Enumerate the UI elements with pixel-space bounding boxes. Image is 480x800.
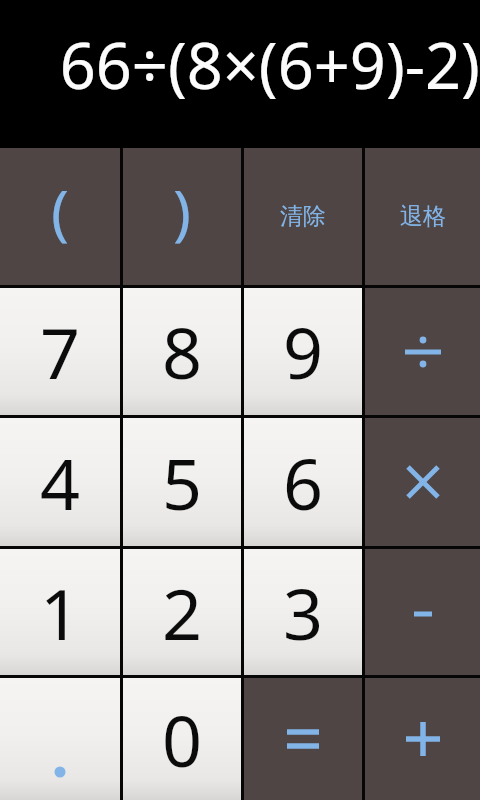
staticText: 退格	[400, 202, 446, 231]
staticText: 9	[283, 304, 324, 399]
staticText: 7	[40, 304, 81, 399]
staticText: 清除	[280, 202, 326, 231]
staticText: 2	[162, 565, 203, 660]
staticText: 1	[40, 565, 81, 660]
staticText: 5	[162, 435, 203, 530]
staticText: 4	[40, 435, 81, 530]
button[interactable]: Open parenthesis	[0, 148, 120, 285]
button[interactable]: Minus	[365, 549, 480, 675]
button[interactable]: 6	[244, 418, 362, 546]
button[interactable]: Divide	[365, 288, 480, 415]
button[interactable]: Equals	[244, 678, 362, 800]
button[interactable]: 5	[123, 418, 241, 546]
staticText: 3	[283, 565, 324, 660]
button[interactable]: Multiply	[365, 418, 480, 546]
button[interactable]: 7	[0, 288, 120, 415]
button[interactable]: 4	[0, 418, 120, 546]
button[interactable]: 66÷(8×(6+9)-2)	[0, 0, 480, 148]
staticText: 6	[283, 435, 324, 530]
button[interactable]: Decimal point	[0, 678, 120, 800]
button[interactable]: 1	[0, 549, 120, 675]
button[interactable]: 9	[244, 288, 362, 415]
button[interactable]: Clear	[244, 148, 362, 285]
staticText: )	[173, 170, 191, 252]
staticText: 0	[162, 692, 203, 787]
button[interactable]: Backspace	[365, 148, 480, 285]
button[interactable]: Close parenthesis	[123, 148, 241, 285]
button[interactable]: 8	[123, 288, 241, 415]
button[interactable]: Plus	[365, 678, 480, 800]
staticText: (	[51, 170, 69, 252]
button[interactable]: 0	[123, 678, 241, 800]
staticText: 8	[162, 304, 203, 399]
button[interactable]: 2	[123, 549, 241, 675]
staticText: 66÷(8×(6+9)-2)	[0, 22, 480, 108]
button[interactable]: 3	[244, 549, 362, 675]
